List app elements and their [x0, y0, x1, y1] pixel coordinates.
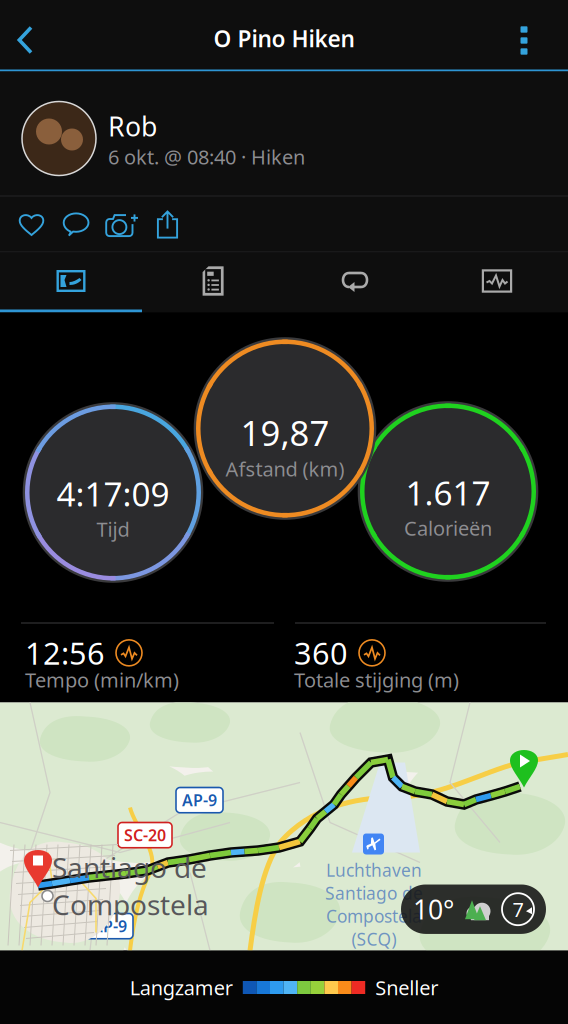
staticText: Totale stijging (m)	[294, 666, 459, 693]
staticText: 7	[512, 896, 523, 922]
button[interactable]: Like	[9, 198, 54, 250]
staticText: Calorieën	[404, 515, 492, 541]
button[interactable]: Charts	[426, 252, 568, 312]
button[interactable]: Comment	[54, 198, 99, 250]
staticText: 19,87	[240, 409, 329, 455]
staticText: AP-9	[182, 789, 217, 811]
staticText: (SCQ)	[351, 927, 396, 950]
button[interactable]: More options	[500, 19, 548, 61]
staticText: Compostela	[52, 886, 209, 923]
staticText: Santiago de	[52, 848, 207, 886]
button[interactable]: Add photo	[99, 198, 145, 250]
staticText: 360	[294, 632, 348, 673]
staticText: Tijd	[96, 516, 129, 542]
staticText: Sneller	[375, 974, 438, 1001]
button[interactable]: Map	[0, 252, 142, 312]
button[interactable]: Back	[0, 14, 58, 66]
staticText: 12:56	[25, 632, 105, 673]
staticText: Langzamer	[130, 974, 233, 1001]
staticText: O Pino Hiken	[213, 23, 354, 53]
button[interactable]: Details	[142, 252, 284, 312]
staticText: 6 okt. @ 08:40 · Hiken	[108, 143, 305, 170]
staticText: Luchthaven	[326, 858, 422, 881]
staticText: AP-9	[92, 915, 127, 937]
staticText: 1.617	[405, 470, 490, 515]
staticText: Afstand (km)	[225, 455, 344, 482]
staticText: Compostela	[326, 904, 422, 927]
staticText: 4:17:09	[56, 471, 169, 516]
button[interactable]: Laps	[284, 252, 426, 312]
staticText: Rob	[108, 108, 157, 144]
staticText: SC-20	[124, 824, 166, 846]
staticText: Santiago de	[325, 881, 423, 904]
staticText: Tempo (min/km)	[25, 666, 179, 693]
button[interactable]: Share	[145, 198, 190, 250]
staticText: 10°	[413, 891, 454, 927]
